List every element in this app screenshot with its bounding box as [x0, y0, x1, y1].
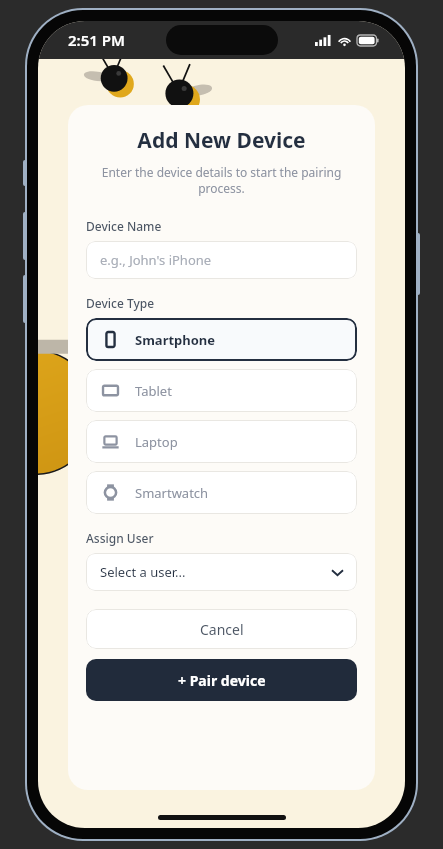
staticText: Laptop	[135, 433, 178, 451]
staticText: Device Type	[86, 295, 155, 311]
button[interactable]: + Pair device	[86, 659, 357, 701]
staticText: Device Name	[86, 218, 162, 234]
button[interactable]: Tablet	[86, 369, 357, 412]
staticText: Select a user...	[100, 563, 186, 581]
button[interactable]: Smartwatch	[86, 471, 357, 514]
staticText: Cancel	[200, 620, 244, 639]
staticText: Smartwatch	[135, 484, 209, 502]
button[interactable]: e.g., John's iPhone	[86, 241, 357, 279]
staticText: Assign User	[86, 530, 154, 546]
button[interactable]: Select a user...	[86, 553, 357, 591]
staticText: Tablet	[135, 382, 172, 400]
staticText: Smartphone	[135, 331, 216, 349]
button[interactable]: Laptop	[86, 420, 357, 463]
staticText: 2:51 PM	[68, 30, 125, 50]
staticText: Enter the device details to start the pa…	[86, 164, 357, 196]
staticText: Add New Device	[86, 126, 357, 155]
staticText: e.g., John's iPhone	[100, 251, 212, 269]
staticText: + Pair device	[178, 671, 266, 690]
button[interactable]: Cancel	[86, 609, 357, 649]
button[interactable]: Smartphone	[86, 318, 357, 361]
